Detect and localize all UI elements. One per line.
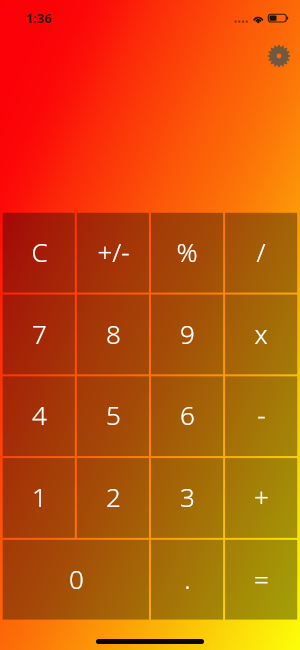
button[interactable]: +/- — [76, 212, 150, 294]
button[interactable]: 7 — [2, 294, 76, 376]
staticText: 1:36 — [26, 9, 52, 27]
staticText: 5 — [106, 397, 121, 432]
button[interactable]: / — [224, 212, 298, 294]
button[interactable]: x — [224, 294, 298, 376]
button[interactable]: C — [2, 212, 76, 294]
button[interactable]: + — [224, 457, 298, 539]
staticText: % — [176, 234, 198, 269]
button[interactable]: 6 — [150, 375, 224, 457]
staticText: / — [256, 234, 266, 269]
button[interactable]: 5 — [76, 375, 150, 457]
staticText: x — [254, 316, 268, 351]
button[interactable]: 3 — [150, 457, 224, 539]
staticText: 4 — [32, 397, 47, 432]
button[interactable]: . — [150, 539, 224, 621]
button[interactable]: 2 — [76, 457, 150, 539]
button[interactable]: = — [224, 539, 298, 621]
staticText: 6 — [180, 397, 195, 432]
staticText: 2 — [106, 479, 121, 514]
staticText: +/- — [97, 234, 130, 269]
button[interactable]: Settings — [265, 42, 293, 70]
button[interactable]: 9 — [150, 294, 224, 376]
button[interactable]: 1 — [2, 457, 76, 539]
staticText: 3 — [180, 479, 195, 514]
button[interactable]: 0 — [2, 539, 150, 621]
staticText: 8 — [106, 316, 121, 351]
button[interactable]: 4 — [2, 375, 76, 457]
staticText: 1 — [32, 479, 47, 514]
button[interactable]: - — [224, 375, 298, 457]
staticText: 7 — [32, 316, 47, 351]
button[interactable]: % — [150, 212, 224, 294]
staticText: C — [31, 234, 48, 269]
staticText: = — [254, 561, 269, 596]
staticText: 0 — [69, 561, 84, 596]
staticText: 9 — [180, 316, 195, 351]
staticText: . — [184, 561, 191, 596]
staticText: - — [257, 397, 266, 432]
staticText: + — [254, 479, 269, 514]
button[interactable]: 8 — [76, 294, 150, 376]
